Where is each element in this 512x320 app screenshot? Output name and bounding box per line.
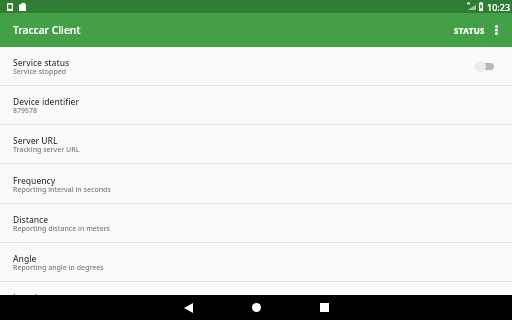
button[interactable]: Back: [154, 295, 222, 320]
button[interactable]: More options: [487, 15, 505, 45]
staticText: 10:23: [487, 1, 511, 13]
button[interactable]: Angle: [0, 243, 512, 282]
button[interactable]: Server URL: [0, 125, 512, 164]
staticText: STATUS: [454, 25, 485, 36]
staticText: Tracking server URL: [13, 145, 80, 155]
button[interactable]: Service status toggle: [475, 59, 499, 73]
staticText: Traccar Client: [13, 23, 81, 37]
staticText: Service stopped: [13, 67, 67, 77]
staticText: Distance: [13, 214, 49, 226]
staticText: Reporting distance in meters: [13, 224, 110, 234]
staticText: Service status: [13, 57, 70, 69]
staticText: Angle: [13, 253, 37, 265]
button[interactable]: Service status: [0, 47, 512, 86]
button[interactable]: Frequency: [0, 165, 512, 204]
staticText: Location accuracy: [13, 292, 86, 295]
staticText: Reporting angle in degrees: [13, 263, 104, 273]
button[interactable]: Home: [222, 295, 290, 320]
staticText: Server URL: [13, 135, 58, 147]
staticText: 879578: [13, 106, 38, 116]
button[interactable]: Device identifier: [0, 86, 512, 125]
button[interactable]: STATUS: [449, 16, 487, 45]
staticText: Frequency: [13, 175, 56, 187]
staticText: Device identifier: [13, 96, 80, 108]
button[interactable]: Recents: [290, 295, 358, 320]
button[interactable]: Distance: [0, 204, 512, 243]
staticText: Reporting interval in seconds: [13, 185, 111, 195]
